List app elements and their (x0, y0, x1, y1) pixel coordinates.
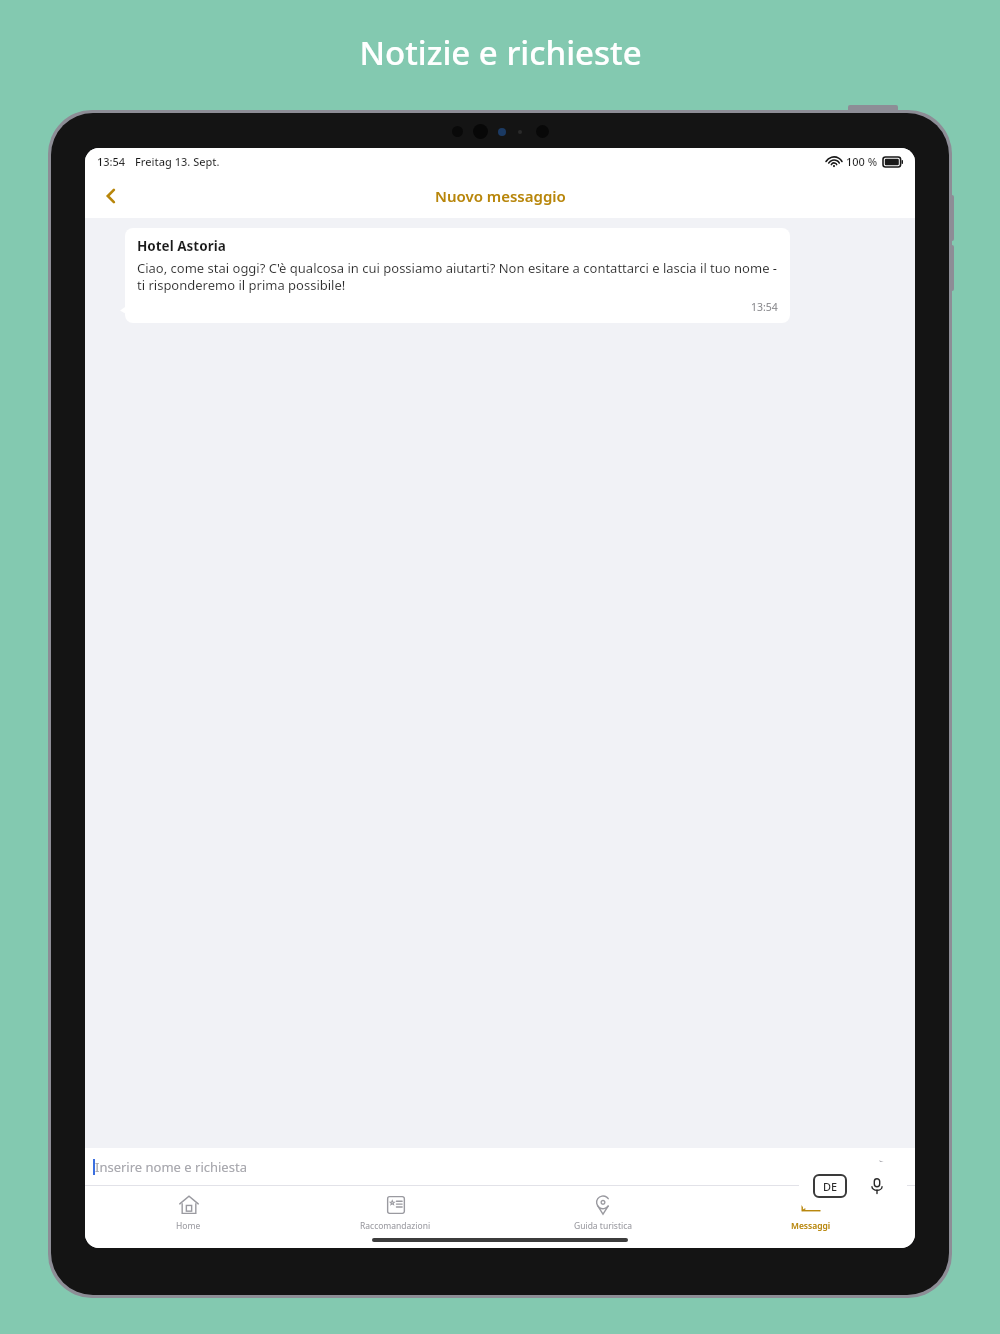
staticText: 100 % (846, 154, 878, 169)
staticText: Inserire nome e richiesta (95, 1158, 247, 1176)
staticText: Freitag 13. Sept. (135, 154, 220, 169)
staticText: Hotel Astoria (137, 237, 226, 255)
staticText: Ciao, come stai oggi? C'è qualcosa in cu… (137, 259, 778, 294)
staticText: Messaggi (791, 1220, 831, 1232)
staticText: Nuovo messaggio (435, 186, 566, 206)
staticText: 13:54 (751, 300, 778, 314)
staticText: Raccomandazioni (360, 1220, 431, 1232)
staticText: DE (823, 1179, 838, 1194)
button[interactable]: Raccomandazioni (292, 1186, 499, 1232)
staticText: 13:54 (97, 154, 126, 169)
button[interactable]: Guida turistica (499, 1186, 707, 1232)
button[interactable]: Messaggi (707, 1186, 915, 1232)
button[interactable]: Home (85, 1186, 292, 1232)
button[interactable]: Hotel Astoria (125, 228, 790, 323)
button[interactable]: Back (91, 176, 131, 216)
staticText: Guida turistica (574, 1220, 633, 1232)
button[interactable]: Voice input (862, 1171, 892, 1201)
staticText: Notizie e richieste (359, 30, 642, 75)
button[interactable]: Send (875, 1154, 901, 1180)
staticText: Home (176, 1220, 201, 1232)
button[interactable]: Inserire nome e richiesta (85, 1148, 915, 1186)
button[interactable]: Language DE (814, 1175, 846, 1197)
